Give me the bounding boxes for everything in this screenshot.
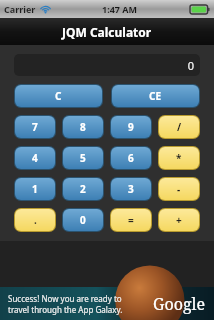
button[interactable]: 7	[15, 116, 55, 138]
staticText: =	[128, 213, 134, 227]
staticText: 1	[32, 182, 38, 196]
button[interactable]: Advertisement	[0, 287, 214, 320]
staticText: 0	[187, 58, 194, 73]
button[interactable]: .	[15, 209, 55, 231]
staticText: *	[176, 151, 182, 165]
button[interactable]: 6	[111, 147, 151, 169]
staticText: Carrier	[4, 3, 36, 15]
button[interactable]: 0	[63, 209, 103, 231]
staticText: 5	[80, 151, 86, 165]
button[interactable]: -	[159, 178, 199, 200]
button[interactable]: /	[159, 116, 199, 138]
staticText: /	[177, 120, 182, 134]
button[interactable]: =	[111, 209, 151, 231]
staticText: 9	[128, 120, 134, 134]
button[interactable]: 3	[111, 178, 151, 200]
staticText: 1:47 AM	[102, 3, 138, 15]
staticText: CE	[149, 89, 162, 103]
staticText: 6	[128, 151, 134, 165]
staticText: 8	[80, 120, 86, 134]
staticText: +	[176, 213, 182, 227]
staticText: 2	[80, 182, 86, 196]
button[interactable]: 1	[15, 178, 55, 200]
staticText: JQM Calculator	[62, 24, 152, 40]
button[interactable]: 4	[15, 147, 55, 169]
button[interactable]: 8	[63, 116, 103, 138]
staticText: 7	[32, 120, 38, 134]
button[interactable]: +	[159, 209, 199, 231]
button[interactable]: C	[15, 85, 102, 107]
button[interactable]: *	[159, 147, 199, 169]
button[interactable]: 9	[111, 116, 151, 138]
staticText: 0	[80, 213, 86, 227]
staticText: 3	[128, 182, 134, 196]
staticText: C	[55, 89, 62, 103]
button[interactable]: 2	[63, 178, 103, 200]
staticText: 4	[32, 151, 38, 165]
staticText: -	[177, 182, 181, 196]
staticText: Success! Now you are ready to travel thr…	[8, 293, 123, 315]
button[interactable]: CE	[112, 85, 199, 107]
staticText: .	[34, 213, 37, 227]
button[interactable]: 5	[63, 147, 103, 169]
staticText: Google	[153, 293, 206, 315]
